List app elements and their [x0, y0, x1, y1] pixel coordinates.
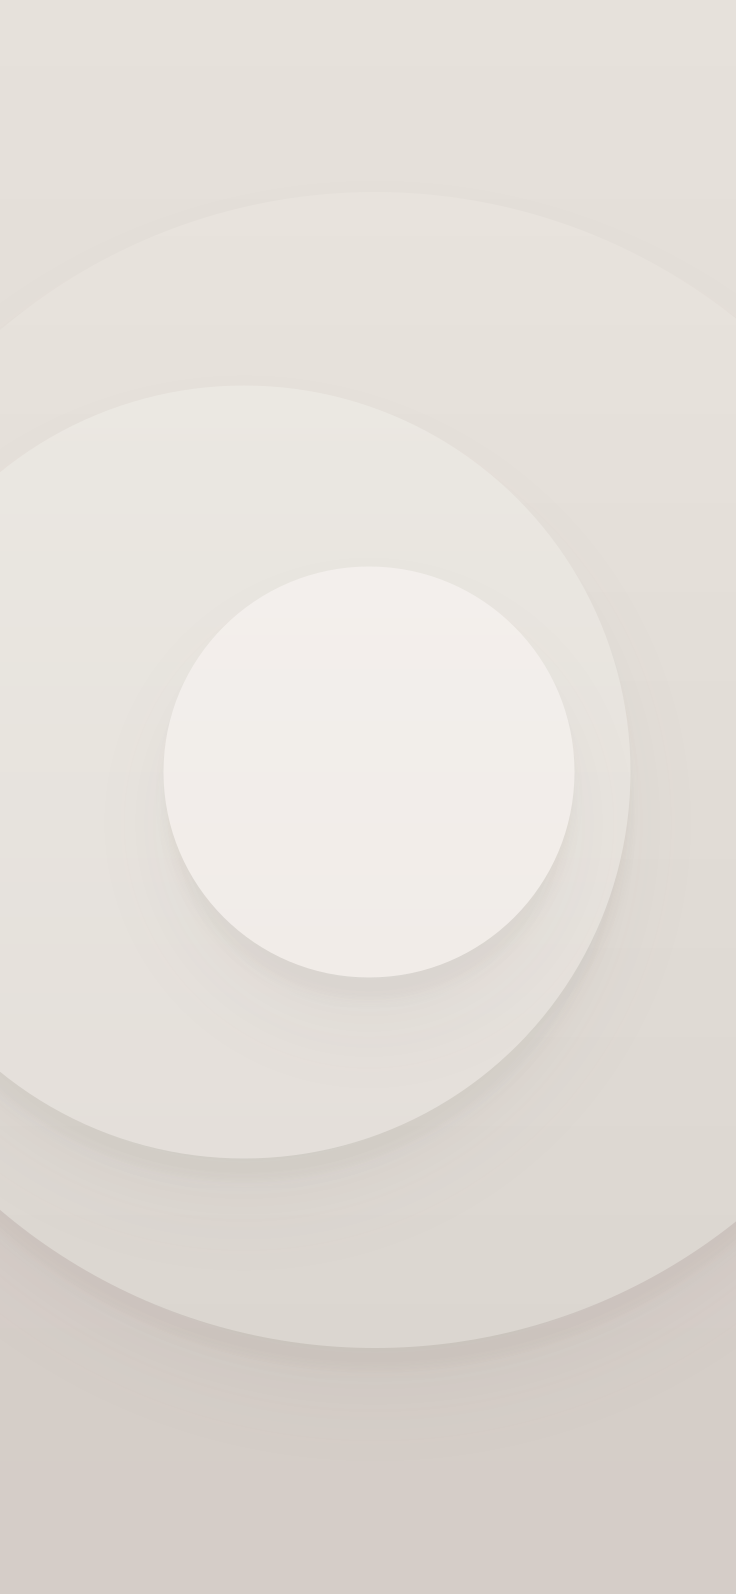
button[interactable]: Begin: [163, 566, 574, 977]
